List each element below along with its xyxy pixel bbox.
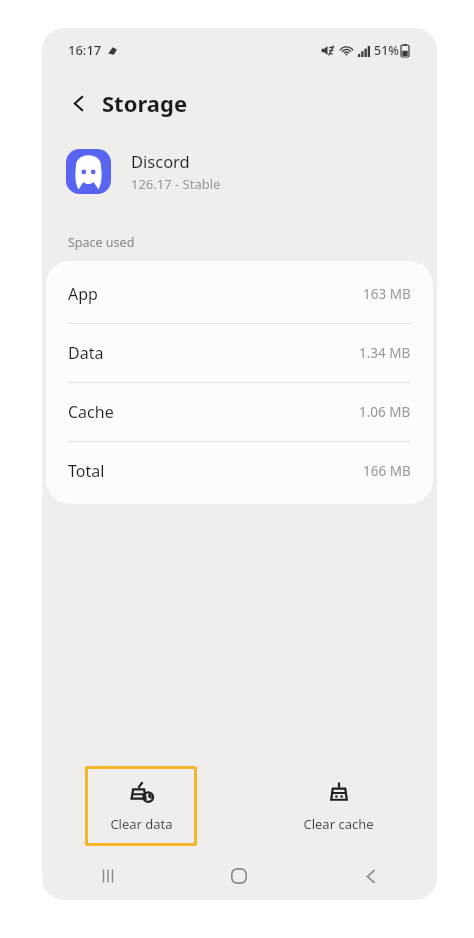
staticText: Clear cache [303,815,374,833]
staticText: Space used [68,234,135,251]
staticText: 1.34 MB [359,344,411,362]
staticText: 1.06 MB [359,403,411,421]
staticText: 16:17 [68,41,102,59]
staticText: App [68,283,98,305]
button[interactable]: Data [46,324,433,382]
staticText: 166 MB [363,462,411,480]
button[interactable]: Recents [42,852,173,900]
button[interactable]: Home [173,852,305,900]
button[interactable]: Clear data [85,766,197,846]
staticText: 51% [374,42,399,59]
button[interactable]: Cache [46,383,433,441]
staticText: Clear data [110,815,173,833]
button[interactable]: Discord [42,134,437,208]
button[interactable]: Back [58,82,100,124]
staticText: Storage [102,88,188,118]
button[interactable]: Total [46,442,433,500]
staticText: Discord [131,150,190,172]
staticText: Cache [68,401,114,423]
button[interactable]: App [46,265,433,323]
button[interactable]: Back [305,852,437,900]
button[interactable]: Clear cache [282,766,394,846]
staticText: 126.17 - Stable [131,175,221,193]
staticText: Data [68,342,104,364]
staticText: Total [68,460,105,482]
staticText: 163 MB [363,285,411,303]
